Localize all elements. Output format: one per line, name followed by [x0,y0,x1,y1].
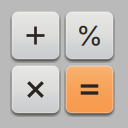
button[interactable]: Percent [66,12,113,59]
button[interactable]: Multiply [12,66,59,113]
staticText: % [76,19,102,52]
button[interactable]: Add [12,12,59,59]
button[interactable]: Equals [66,66,113,113]
